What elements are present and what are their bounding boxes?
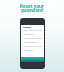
button[interactable] xyxy=(21,57,44,62)
staticText: Reset your password xyxy=(6,3,58,13)
